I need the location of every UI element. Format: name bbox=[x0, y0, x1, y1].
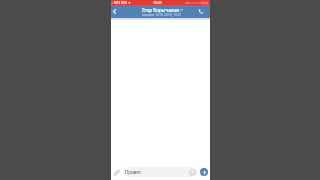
staticText: 10:45 bbox=[153, 0, 162, 5]
staticText: Егор Корычалов bbox=[142, 7, 179, 13]
button[interactable]: Back bbox=[110, 5, 119, 18]
button[interactable]: Привет. bbox=[123, 167, 197, 177]
button[interactable]: Send bbox=[200, 168, 208, 176]
button[interactable]: Attach bbox=[111, 167, 123, 177]
staticText: Привет. bbox=[125, 169, 142, 175]
button[interactable]: Call bbox=[195, 5, 205, 18]
staticText: заходил 15.01.2019, 13:51 bbox=[142, 13, 182, 17]
staticText: MTS RUS bbox=[114, 1, 127, 5]
